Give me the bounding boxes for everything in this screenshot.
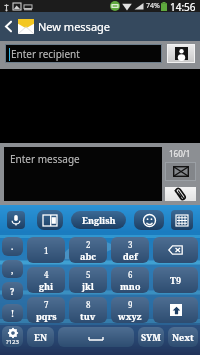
staticText: abc xyxy=(80,250,96,262)
staticText: 6 xyxy=(128,269,133,280)
button[interactable]: . xyxy=(2,237,23,256)
button[interactable]: 4 xyxy=(27,267,65,293)
staticText: wxyz xyxy=(118,310,142,322)
staticText: 3 xyxy=(128,239,133,250)
staticText: def xyxy=(123,250,138,262)
button[interactable]: 6 xyxy=(111,267,149,293)
staticText: jkl xyxy=(82,280,95,292)
staticText: Enter message xyxy=(10,152,80,166)
staticText: 5 xyxy=(86,269,91,280)
button[interactable]: Space xyxy=(58,327,134,347)
button[interactable]: Keyboard layout xyxy=(171,210,193,230)
button[interactable]: 7 xyxy=(27,297,65,323)
staticText: , xyxy=(11,264,14,275)
staticText: 14:56 xyxy=(170,0,196,12)
button[interactable]: Shift xyxy=(153,297,198,323)
button[interactable]: Split keyboard xyxy=(37,210,63,230)
button[interactable]: Settings xyxy=(2,326,23,347)
staticText: ! xyxy=(11,308,15,319)
staticText: English xyxy=(82,214,116,226)
staticText: Enter recipient xyxy=(11,47,80,61)
button[interactable]: Delete xyxy=(153,237,198,263)
button[interactable]: Send message xyxy=(165,162,196,181)
staticText: T9 xyxy=(170,274,181,286)
staticText: 9 xyxy=(128,299,133,310)
staticText: ? xyxy=(10,286,15,297)
staticText: 2 xyxy=(86,239,91,250)
button[interactable]: Choose contact xyxy=(167,44,195,63)
staticText: mno xyxy=(120,280,141,292)
staticText: 4 xyxy=(44,269,49,280)
button[interactable]: Enter recipient xyxy=(5,44,162,63)
staticText: 7 xyxy=(44,299,49,310)
button[interactable]: Attach file xyxy=(165,187,196,201)
staticText: New message xyxy=(38,19,111,34)
button[interactable]: Next xyxy=(168,327,198,347)
button[interactable]: 5 xyxy=(69,267,107,293)
button[interactable]: EN xyxy=(27,327,54,347)
button[interactable]: English xyxy=(71,211,126,229)
staticText: ghi xyxy=(39,280,54,292)
button[interactable]: SYM xyxy=(138,327,164,347)
staticText: 74% xyxy=(146,1,160,11)
staticText: 1 xyxy=(44,245,49,256)
staticText: Next xyxy=(172,331,194,343)
button[interactable]: Voice input xyxy=(7,211,25,229)
staticText: EN xyxy=(34,331,47,343)
staticText: tuv xyxy=(80,310,96,322)
staticText: ?123 xyxy=(6,338,19,346)
button[interactable]: 2 xyxy=(69,237,107,263)
button[interactable]: ? xyxy=(2,282,23,300)
button[interactable]: Enter message xyxy=(4,147,162,201)
button[interactable]: Back xyxy=(0,12,17,41)
button[interactable]: 3 xyxy=(111,237,149,263)
staticText: . xyxy=(11,241,14,252)
staticText: 8 xyxy=(86,299,91,310)
staticText: SYM xyxy=(141,331,161,343)
button[interactable]: , xyxy=(2,260,23,278)
button[interactable]: ! xyxy=(2,304,23,322)
staticText: 160/1 xyxy=(169,148,191,159)
button[interactable]: 8 xyxy=(69,297,107,323)
button[interactable]: 9 xyxy=(111,297,149,323)
button[interactable]: 1 xyxy=(27,237,65,263)
button[interactable]: T9 xyxy=(153,267,198,293)
staticText: pqrs xyxy=(36,310,57,322)
button[interactable]: Emoji xyxy=(134,210,164,230)
